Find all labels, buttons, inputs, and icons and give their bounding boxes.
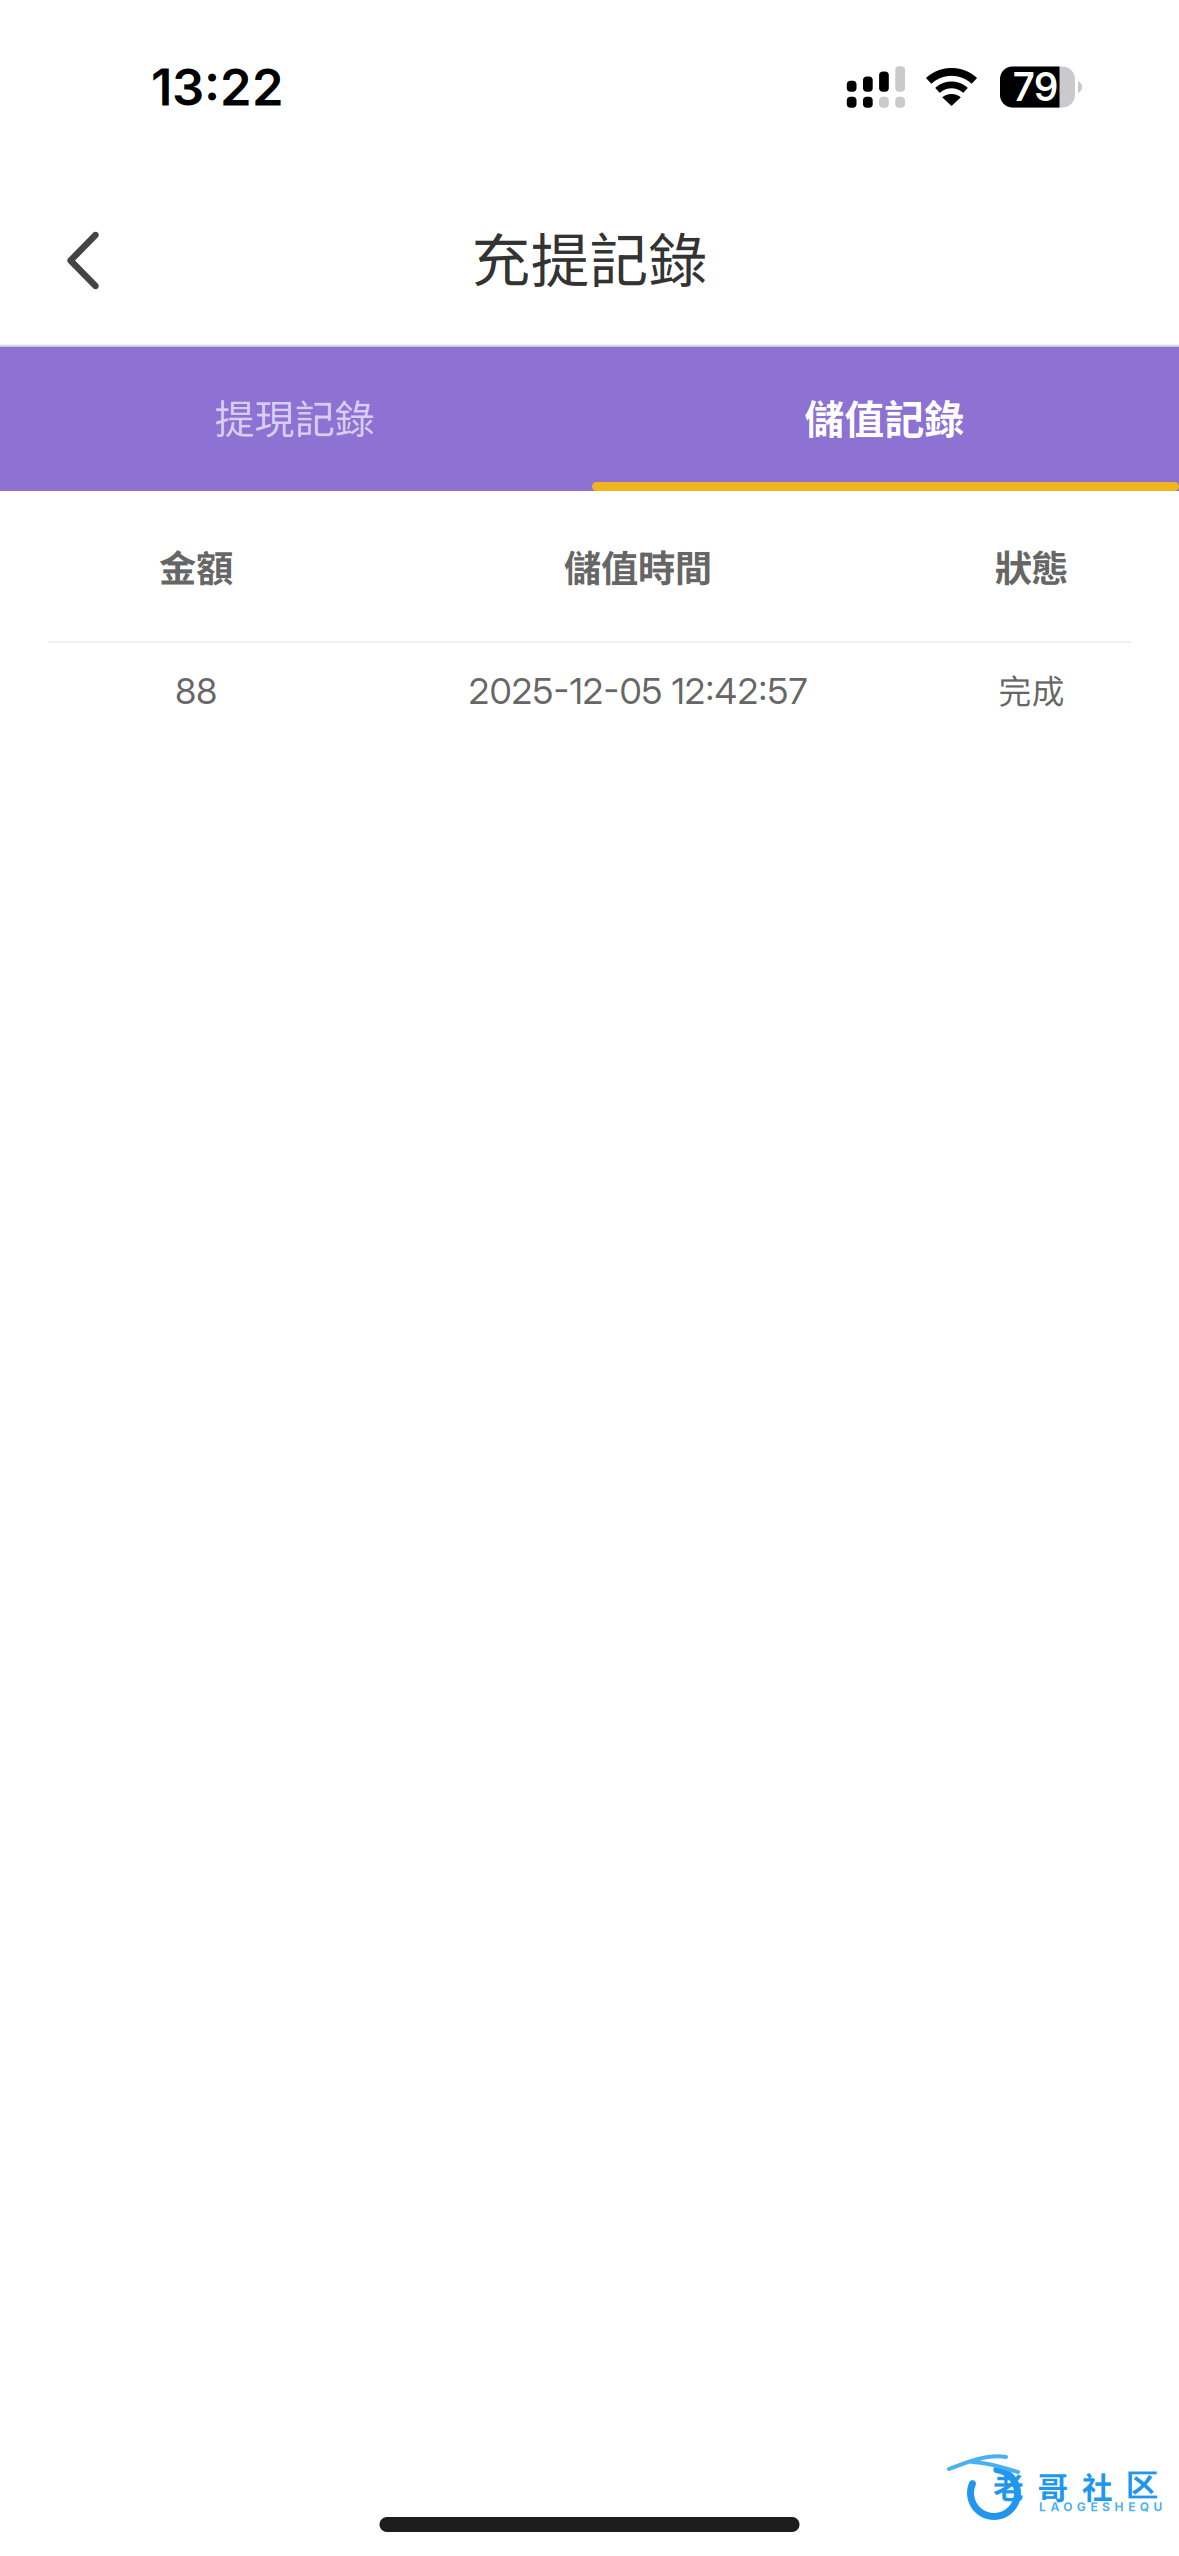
button[interactable]: 提現記錄 <box>0 347 589 482</box>
staticText: 88 <box>175 669 217 713</box>
button[interactable]: 儲值記錄 <box>589 347 1179 482</box>
staticText: LAOGESHEQU <box>1039 2500 1162 2514</box>
staticText: 老哥社区 <box>993 2464 1157 2508</box>
staticText: 2025-12-05 12:42:57 <box>468 669 807 713</box>
staticText: 提現記錄 <box>215 387 375 445</box>
staticText: 狀態 <box>994 539 1068 593</box>
staticText: 79 <box>1013 64 1058 110</box>
button[interactable]: Back <box>28 205 138 315</box>
staticText: 完成 <box>998 665 1064 713</box>
button[interactable]: 88 <box>0 643 1179 739</box>
staticText: 13:22 <box>151 56 284 118</box>
staticText: 金額 <box>159 539 233 593</box>
staticText: 儲值時間 <box>564 539 712 593</box>
staticText: 儲值記錄 <box>804 387 964 445</box>
staticText: 充提記錄 <box>471 214 707 299</box>
